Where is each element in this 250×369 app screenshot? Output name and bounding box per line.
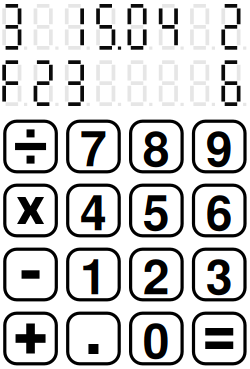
button[interactable]: Divide — [3, 120, 58, 173]
staticText: 4 — [80, 176, 107, 245]
staticText: 2 — [143, 240, 170, 309]
staticText: 0 — [143, 304, 170, 369]
button[interactable]: 0 — [129, 312, 184, 365]
staticText: 8 — [143, 112, 170, 181]
button[interactable]: 2 — [129, 248, 184, 301]
button[interactable]: 5 — [129, 184, 184, 237]
staticText: 9 — [206, 112, 233, 181]
button[interactable]: 8 — [129, 120, 184, 173]
staticText: 6 — [206, 176, 233, 245]
button[interactable]: Equals — [192, 312, 247, 365]
button[interactable]: Multiply — [3, 184, 58, 237]
button[interactable]: 3 — [192, 248, 247, 301]
staticText: 3 — [206, 240, 233, 309]
staticText: 7 — [80, 112, 107, 181]
button[interactable]: Plus — [3, 312, 58, 365]
button[interactable]: Decimal point — [66, 312, 121, 365]
button[interactable]: 9 — [192, 120, 247, 173]
button[interactable]: 7 — [66, 120, 121, 173]
button[interactable]: 4 — [66, 184, 121, 237]
button[interactable]: 1 — [66, 248, 121, 301]
button[interactable]: 6 — [192, 184, 247, 237]
staticText: 1 — [80, 240, 107, 309]
staticText: 5 — [143, 176, 170, 245]
button[interactable]: Minus — [3, 248, 58, 301]
